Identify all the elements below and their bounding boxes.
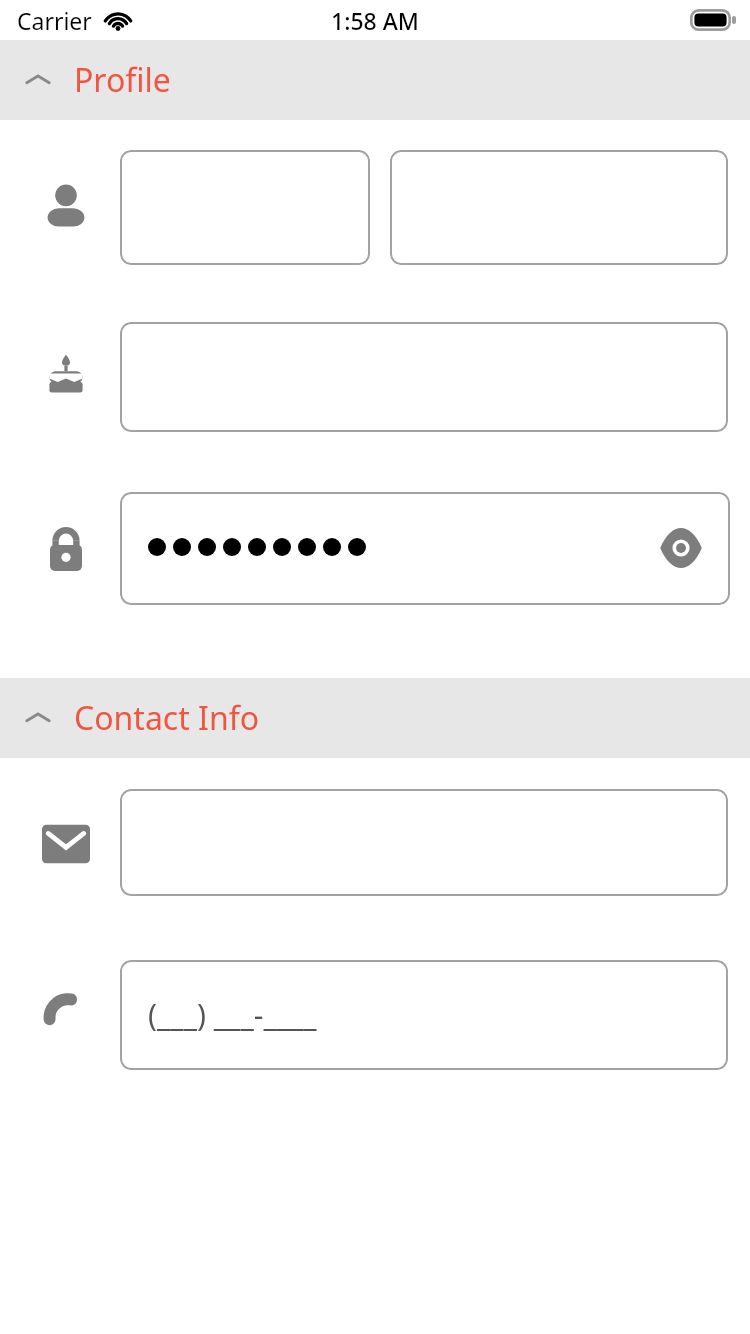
button[interactable] (120, 322, 728, 432)
other: Collapse Profile (24, 66, 52, 94)
button[interactable] (120, 789, 728, 896)
other: Wi-Fi (103, 10, 133, 32)
other: Collapse Contact Info (24, 704, 52, 732)
staticText: (___) ___-____ (148, 994, 317, 1035)
button[interactable]: Collapse Profile (0, 40, 750, 120)
button[interactable]: Collapse Contact Info (0, 678, 750, 758)
other: Password (46, 522, 86, 574)
button[interactable]: Show password (655, 522, 707, 574)
other: Email (42, 822, 90, 866)
staticText: Contact Info (74, 696, 260, 740)
staticText: Carrier (17, 5, 92, 36)
button[interactable] (120, 960, 728, 1070)
other: Name (43, 182, 89, 228)
staticText: 1:58 AM (331, 5, 419, 36)
other: Birthday (43, 352, 89, 398)
other: Phone (44, 990, 90, 1036)
button[interactable] (120, 150, 370, 265)
other: Battery (690, 9, 736, 31)
button[interactable] (120, 492, 730, 605)
staticText: Profile (74, 58, 171, 102)
button[interactable] (390, 150, 728, 265)
